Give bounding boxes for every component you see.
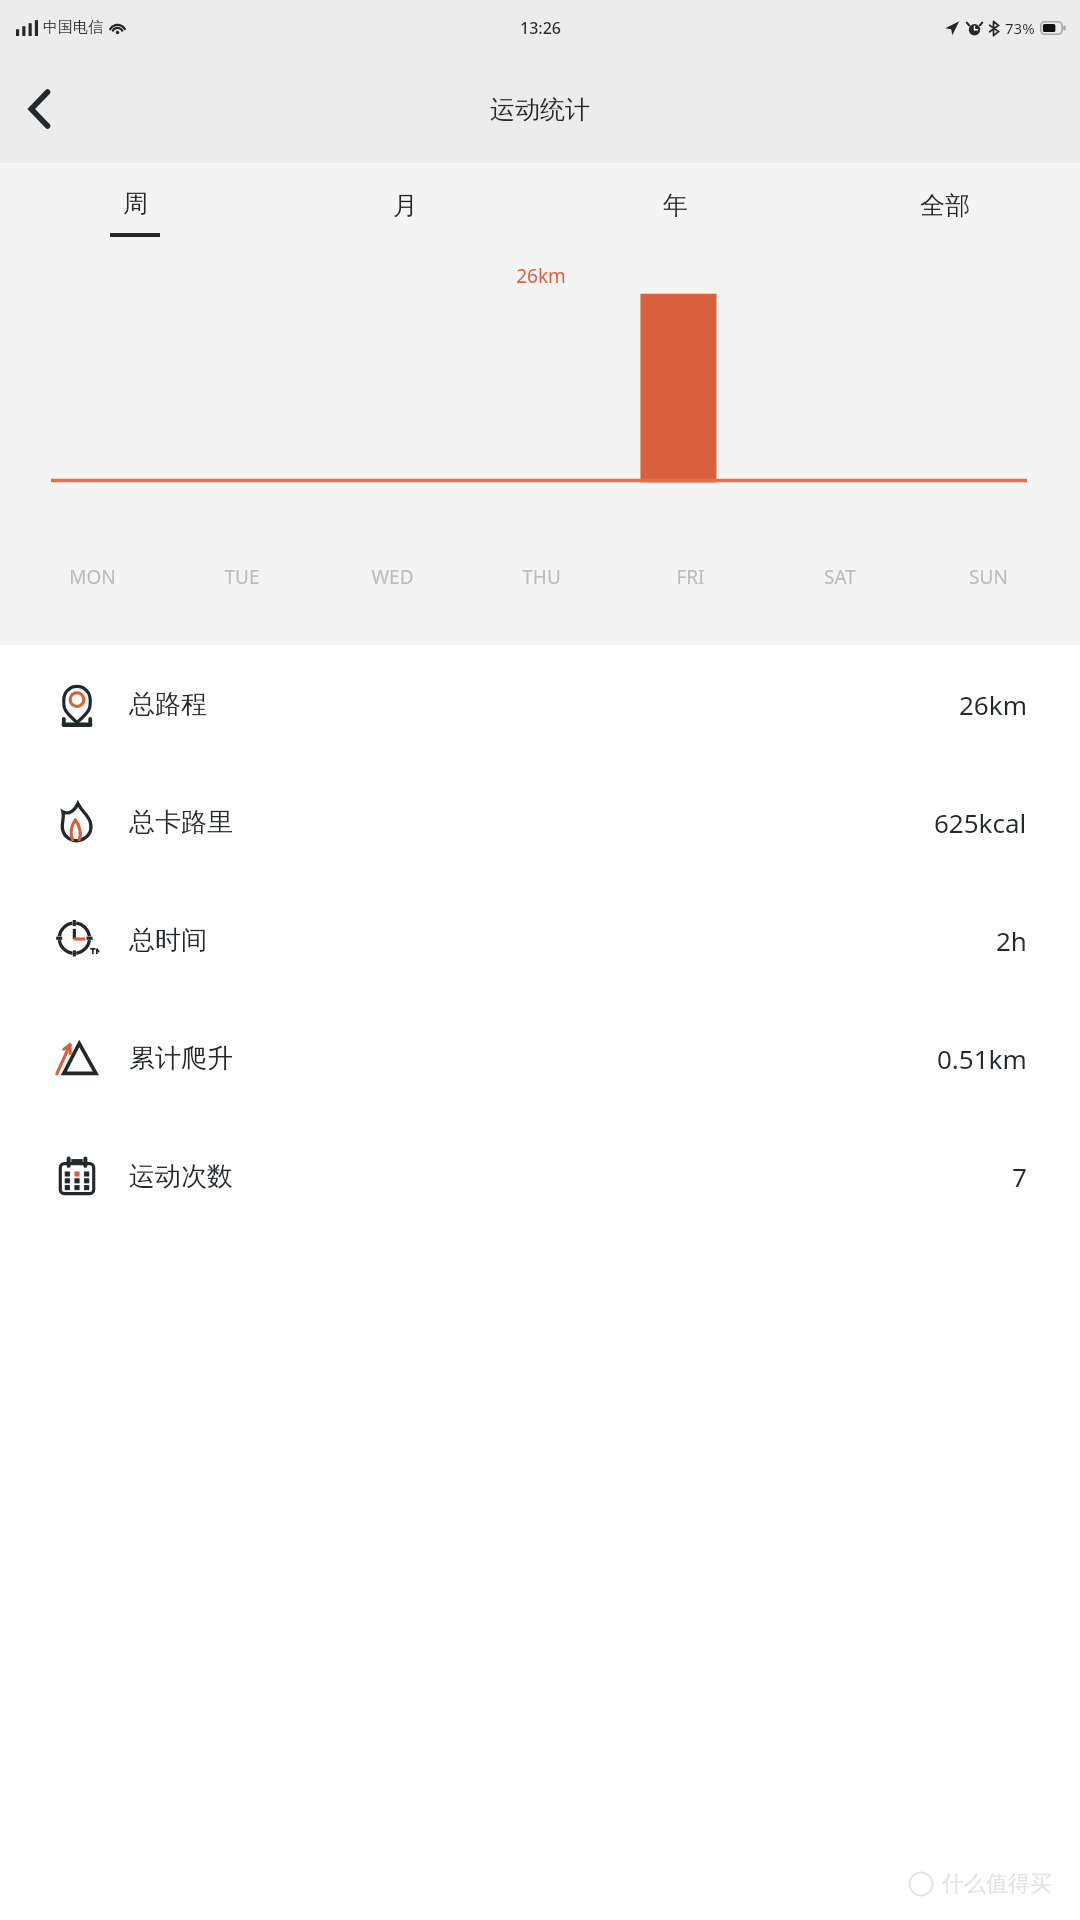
staticText: 0.51km	[937, 1041, 1027, 1076]
staticText: 全部	[920, 190, 970, 221]
staticText: 总路程	[129, 688, 207, 721]
button[interactable]: 周	[0, 163, 270, 261]
staticText: MON	[69, 564, 116, 590]
staticText: FRI	[676, 564, 705, 590]
staticText: WED	[371, 564, 414, 590]
staticText: 总卡路里	[129, 806, 233, 839]
staticText: 累计爬升	[129, 1042, 233, 1075]
staticText: 什么值得买	[942, 1870, 1052, 1898]
staticText: 周	[123, 188, 148, 219]
staticText: 2h	[996, 923, 1027, 958]
staticText: 总时间	[129, 924, 207, 957]
staticText: 13:26	[520, 17, 561, 39]
button[interactable]: 年	[540, 163, 810, 261]
staticText: 运动次数	[129, 1160, 233, 1193]
staticText: 中国电信	[43, 18, 103, 37]
button[interactable]: 总卡路里	[0, 763, 1080, 881]
button[interactable]: 总时间	[0, 881, 1080, 999]
staticText: TUE	[224, 564, 260, 590]
staticText: SUN	[969, 564, 1008, 590]
button[interactable]: 累计爬升	[0, 999, 1080, 1117]
staticText: THU	[522, 564, 561, 590]
staticText: 73%	[1005, 18, 1035, 38]
staticText: 运动统计	[490, 94, 590, 125]
staticText: SAT	[824, 564, 856, 590]
button[interactable]: 总路程	[0, 645, 1080, 763]
staticText: 26km	[959, 687, 1027, 722]
staticText: 月	[393, 190, 418, 221]
staticText: 年	[663, 190, 688, 221]
staticText: 625kcal	[934, 805, 1027, 840]
button[interactable]: 月	[270, 163, 540, 261]
button[interactable]: Back	[8, 77, 72, 141]
staticText: 7	[1012, 1159, 1027, 1194]
button[interactable]: 全部	[810, 163, 1080, 261]
staticText: 26km	[501, 263, 581, 289]
button[interactable]: 运动次数	[0, 1117, 1080, 1235]
